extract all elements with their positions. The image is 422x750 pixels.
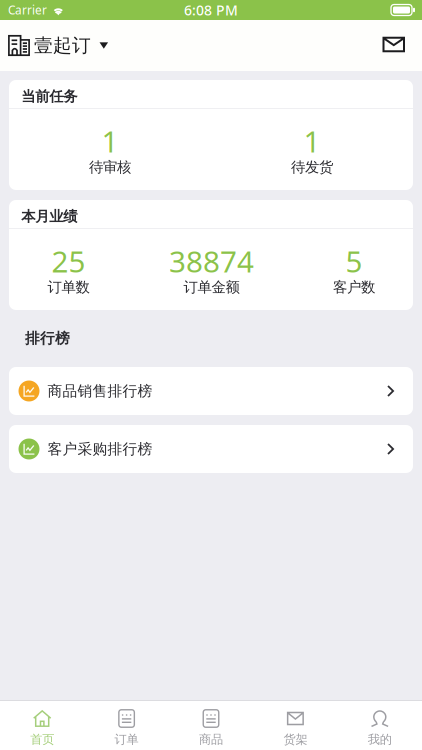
staticText: 货架 (283, 732, 307, 747)
staticText: 壹起订 (34, 34, 91, 57)
button[interactable]: Messages (376, 32, 412, 59)
staticText: 首页 (30, 732, 54, 747)
staticText: 订单 (115, 732, 139, 747)
staticText: Carrier (8, 2, 47, 18)
button[interactable]: 商品 (169, 700, 253, 750)
staticText: 待审核 (89, 158, 131, 176)
staticText: 25 (51, 241, 85, 281)
staticText: 1 (101, 121, 118, 161)
staticText: 商品销售排行榜 (47, 382, 152, 400)
button[interactable]: 首页 (0, 700, 84, 750)
staticText: 排行榜 (25, 329, 70, 348)
staticText: 订单金额 (183, 278, 239, 296)
staticText: 1 (303, 121, 320, 161)
staticText: 订单数 (47, 278, 89, 296)
button[interactable]: 商品销售排行榜 (9, 367, 413, 415)
staticText: 5 (345, 241, 362, 281)
button[interactable]: 壹起订 (8, 34, 108, 57)
button[interactable]: 客户采购排行榜 (9, 425, 413, 473)
staticText: 当前任务 (21, 87, 77, 105)
button[interactable]: 我的 (338, 700, 422, 750)
button[interactable]: 订单 (84, 700, 169, 750)
staticText: 本月业绩 (21, 207, 77, 225)
staticText: 38874 (169, 241, 254, 281)
staticText: 客户数 (333, 278, 375, 296)
button[interactable]: 货架 (253, 700, 338, 750)
staticText: 我的 (368, 732, 392, 747)
staticText: 客户采购排行榜 (47, 440, 152, 458)
staticText: 6:08 PM (184, 0, 238, 20)
staticText: 商品 (199, 732, 223, 747)
staticText: 待发货 (291, 158, 333, 176)
